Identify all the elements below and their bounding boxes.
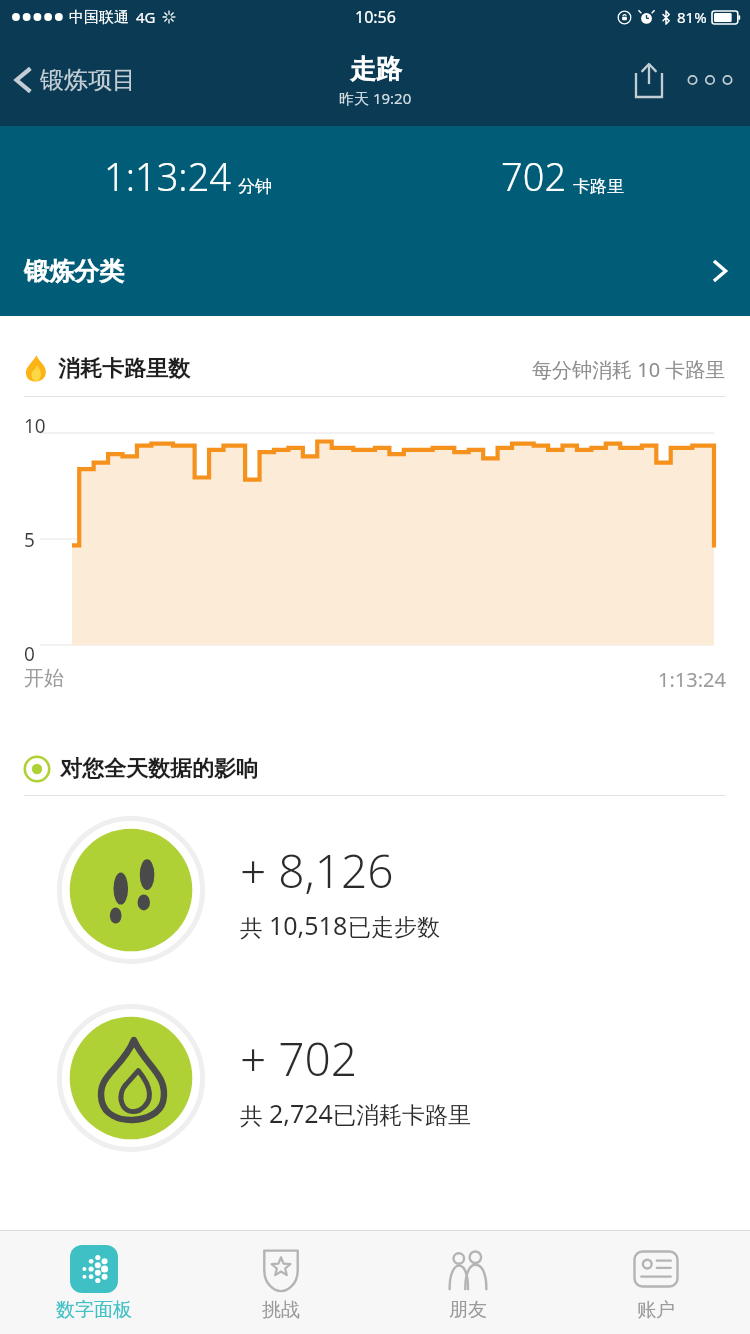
staticText: 5 bbox=[24, 527, 35, 553]
staticText: 走路 bbox=[350, 53, 402, 86]
staticText: 对您全天数据的影响 bbox=[60, 755, 258, 783]
staticText: 数字面板 bbox=[56, 1298, 132, 1322]
staticText: 朋友 bbox=[449, 1298, 487, 1322]
button[interactable]: 挑战 bbox=[187, 1231, 374, 1334]
button[interactable]: + 702 bbox=[0, 984, 750, 1172]
staticText: 账户 bbox=[637, 1298, 675, 1322]
staticText: 分钟 bbox=[238, 176, 272, 197]
staticText: 开始 bbox=[24, 666, 64, 691]
staticText: 卡路里 bbox=[573, 176, 624, 197]
staticText: 1:13:24 bbox=[658, 666, 726, 693]
staticText: 10 bbox=[24, 413, 46, 439]
staticText: 2,724 bbox=[269, 1096, 333, 1130]
staticText: 共 bbox=[240, 911, 269, 942]
staticText: 1:13:24 bbox=[104, 150, 232, 202]
button[interactable]: 朋友 bbox=[374, 1231, 562, 1334]
staticText: + 8,126 bbox=[240, 839, 394, 902]
staticText: 锻炼分类 bbox=[24, 256, 124, 287]
staticText: 0 bbox=[24, 641, 35, 667]
button[interactable]: 账户 bbox=[562, 1231, 750, 1334]
staticText: 中国联通 bbox=[69, 8, 129, 27]
staticText: 已消耗卡路里 bbox=[333, 1101, 471, 1130]
staticText: 已走步数 bbox=[348, 913, 440, 942]
button[interactable]: More options bbox=[678, 48, 742, 112]
staticText: + 702 bbox=[240, 1027, 358, 1090]
staticText: 81% bbox=[677, 7, 707, 27]
staticText: 昨天 19:20 bbox=[339, 88, 412, 108]
staticText: 消耗卡路里数 bbox=[58, 355, 190, 383]
button[interactable]: 锻炼项目 bbox=[0, 55, 150, 105]
staticText: 挑战 bbox=[262, 1298, 300, 1322]
staticText: 10:56 bbox=[355, 6, 396, 28]
staticText: 4G bbox=[136, 7, 156, 27]
button[interactable]: + 8,126 bbox=[0, 796, 750, 984]
staticText: 702 bbox=[501, 150, 567, 202]
staticText: 锻炼项目 bbox=[40, 65, 136, 95]
staticText: 每分钟消耗 10 卡路里 bbox=[532, 356, 726, 383]
button[interactable]: 数字面板 bbox=[0, 1231, 187, 1334]
staticText: 10,518 bbox=[269, 908, 348, 942]
button[interactable]: Share bbox=[620, 51, 678, 109]
staticText: 共 bbox=[240, 1099, 269, 1130]
button[interactable]: 锻炼分类 bbox=[0, 226, 750, 316]
